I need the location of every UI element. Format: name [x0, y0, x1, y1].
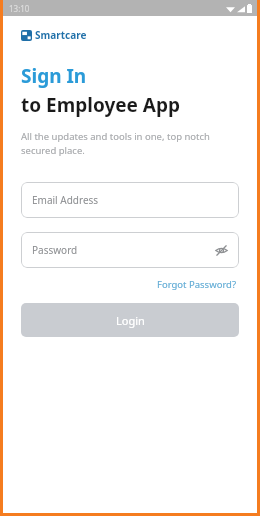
button[interactable]: Password [21, 232, 239, 268]
staticText: Forgot Password? [157, 278, 237, 291]
staticText: to Employee App [21, 92, 181, 118]
button[interactable]: Forgot Password? [155, 276, 239, 293]
button[interactable]: Show password [211, 240, 231, 260]
staticText: Smartcare [35, 28, 87, 42]
button[interactable]: Login [21, 303, 239, 337]
staticText: Login [116, 313, 145, 328]
staticText: Sign In [21, 63, 87, 89]
staticText: All the updates and tools in one, top no… [21, 130, 210, 157]
button[interactable]: Email Address [21, 182, 239, 218]
staticText: Password [32, 243, 78, 257]
staticText: Email Address [32, 193, 99, 207]
staticText: 13:10 [9, 3, 30, 14]
